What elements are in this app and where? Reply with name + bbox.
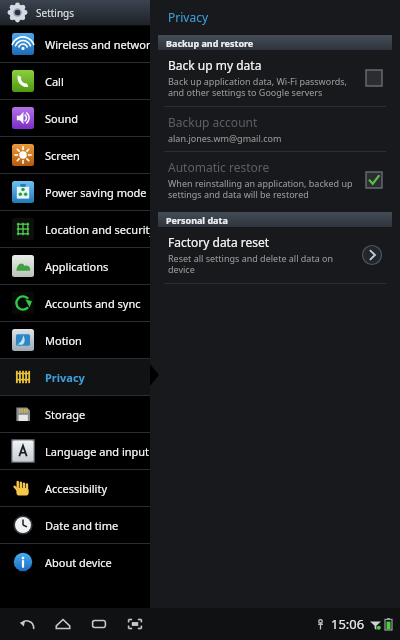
button[interactable]: Call bbox=[0, 63, 150, 99]
staticText: Call bbox=[45, 74, 64, 89]
button[interactable]: Accessibility bbox=[0, 470, 150, 506]
button[interactable]: Date and time bbox=[0, 507, 150, 543]
button[interactable]: Screenshot bbox=[122, 611, 148, 637]
staticText: Language and input bbox=[45, 444, 150, 459]
staticText: Personal data bbox=[166, 214, 228, 226]
staticText: Power saving mode bbox=[45, 185, 147, 200]
button[interactable]: Applications bbox=[0, 248, 150, 284]
button[interactable]: Motion bbox=[0, 322, 150, 358]
button[interactable]: About device bbox=[0, 544, 150, 580]
button[interactable]: Factory data reset bbox=[150, 227, 400, 283]
button[interactable]: Language and input bbox=[0, 433, 150, 469]
staticText: Factory data reset bbox=[168, 234, 270, 250]
button[interactable]: Recent apps bbox=[86, 611, 112, 637]
staticText: Back up application data, Wi-Fi password… bbox=[168, 75, 356, 99]
staticText: Sound bbox=[45, 111, 79, 126]
staticText: Privacy bbox=[168, 9, 209, 25]
button[interactable]: Privacy bbox=[0, 359, 150, 395]
staticText: Screen bbox=[45, 148, 80, 163]
staticText: Motion bbox=[45, 333, 82, 348]
staticText: Backup and restore bbox=[166, 37, 254, 49]
button[interactable]: Open factory data reset bbox=[360, 243, 384, 267]
staticText: Accessibility bbox=[45, 481, 108, 496]
button[interactable]: Accounts and sync bbox=[0, 285, 150, 321]
button[interactable]: Wireless and network bbox=[0, 26, 150, 62]
staticText: Backup account bbox=[168, 114, 258, 130]
staticText: Accounts and sync bbox=[45, 296, 141, 311]
button[interactable]: Storage bbox=[0, 396, 150, 432]
staticText: Wireless and network bbox=[45, 37, 150, 52]
staticText: About device bbox=[45, 555, 112, 570]
staticText: Reset all settings and delete all data o… bbox=[168, 252, 352, 276]
button[interactable]: Screen bbox=[0, 137, 150, 173]
staticText: Location and security bbox=[45, 222, 150, 237]
button[interactable]: Checked bbox=[364, 170, 384, 190]
staticText: When reinstalling an application, backed… bbox=[168, 177, 356, 201]
staticText: Applications bbox=[45, 259, 109, 274]
staticText: Date and time bbox=[45, 518, 119, 533]
button[interactable]: Home bbox=[50, 611, 76, 637]
button[interactable]: Backup account bbox=[150, 107, 400, 151]
button[interactable]: Power saving mode bbox=[0, 174, 150, 210]
staticText: Automatic restore bbox=[168, 159, 270, 175]
staticText: Storage bbox=[45, 407, 86, 422]
staticText: 15:06 bbox=[331, 615, 365, 633]
button[interactable]: Unchecked bbox=[364, 68, 384, 88]
button[interactable]: Sound bbox=[0, 100, 150, 136]
staticText: alan.jones.wm@gmail.com bbox=[168, 132, 282, 144]
button[interactable]: Automatic restore bbox=[150, 152, 400, 208]
staticText: Back up my data bbox=[168, 57, 262, 73]
button[interactable]: Location and security bbox=[0, 211, 150, 247]
staticText: Privacy bbox=[45, 370, 85, 385]
button[interactable]: Back bbox=[14, 611, 40, 637]
button[interactable]: Back up my data bbox=[150, 50, 400, 106]
staticText: Settings bbox=[36, 6, 75, 20]
